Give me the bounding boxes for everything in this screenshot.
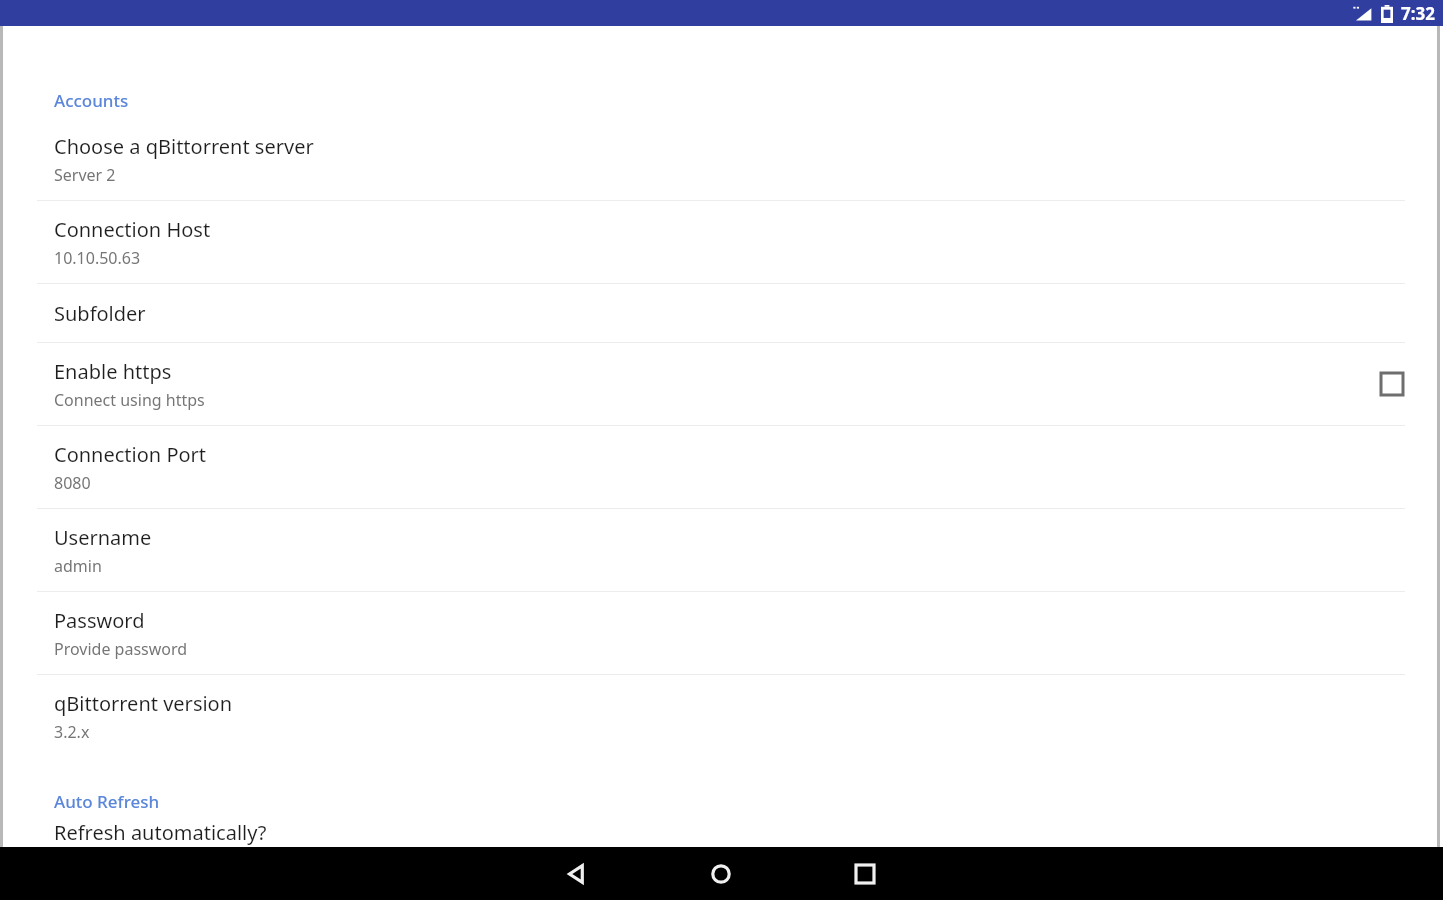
staticText: Connect using https bbox=[54, 389, 205, 411]
staticText: Subfolder bbox=[54, 300, 146, 327]
staticText: Enable https bbox=[54, 358, 172, 385]
button[interactable]: Password bbox=[0, 592, 1443, 674]
staticText: 7:32 bbox=[1401, 2, 1435, 25]
staticText: Username bbox=[54, 524, 152, 551]
staticText: Choose a qBittorrent server bbox=[54, 133, 314, 160]
other: Enable https checkbox bbox=[1381, 373, 1403, 395]
button[interactable]: Home bbox=[699, 852, 743, 896]
button[interactable]: Choose a qBittorrent server bbox=[0, 118, 1443, 200]
staticText: admin bbox=[54, 555, 102, 577]
button[interactable]: Subfolder bbox=[0, 284, 1443, 342]
button[interactable]: Refresh automatically? bbox=[0, 819, 1443, 847]
staticText: 8080 bbox=[54, 472, 91, 494]
staticText: Provide password bbox=[54, 638, 188, 660]
button[interactable]: Back bbox=[555, 852, 599, 896]
button[interactable]: qBittorrent version bbox=[0, 675, 1443, 757]
staticText: 10.10.50.63 bbox=[54, 247, 141, 269]
staticText: Refresh automatically? bbox=[54, 819, 267, 846]
staticText: Server 2 bbox=[54, 164, 116, 186]
staticText: Accounts bbox=[54, 89, 129, 112]
staticText: qBittorrent version bbox=[54, 690, 233, 717]
button[interactable]: Username bbox=[0, 509, 1443, 591]
staticText: Connection Port bbox=[54, 441, 207, 468]
staticText: 3.2.x bbox=[54, 721, 90, 743]
staticText: Password bbox=[54, 607, 145, 634]
staticText: Connection Host bbox=[54, 216, 211, 243]
staticText: Auto Refresh bbox=[54, 790, 160, 813]
button[interactable]: Connection Port bbox=[0, 426, 1443, 508]
button[interactable]: Enable https bbox=[0, 343, 1443, 425]
button[interactable]: Recent apps bbox=[843, 852, 887, 896]
button[interactable]: Connection Host bbox=[0, 201, 1443, 283]
